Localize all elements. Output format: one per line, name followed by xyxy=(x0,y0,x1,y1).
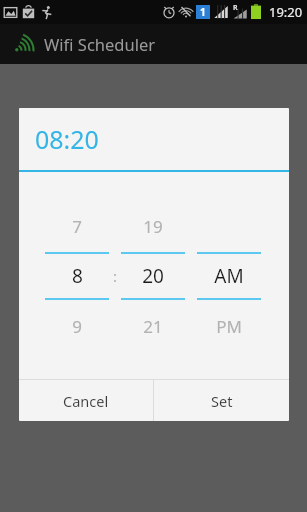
staticText: 19:20 xyxy=(269,3,303,21)
staticText: 19 xyxy=(143,215,163,238)
staticText: 20 xyxy=(142,263,164,289)
staticText: 8 xyxy=(72,263,83,289)
button[interactable]: 20 xyxy=(121,254,185,298)
button[interactable]: 7 xyxy=(45,206,109,246)
button[interactable]: PM xyxy=(197,306,261,346)
staticText: Wifi Scheduler xyxy=(44,33,156,55)
staticText: Cancel xyxy=(63,391,109,411)
button[interactable]: AM xyxy=(197,254,261,298)
staticText: 08:20 xyxy=(35,122,99,156)
staticText: R xyxy=(233,3,238,13)
button[interactable]: Set xyxy=(154,380,289,421)
staticText: 21 xyxy=(143,315,163,338)
button[interactable]: Cancel xyxy=(19,380,153,421)
staticText: 1 xyxy=(200,5,206,19)
button[interactable]: 8 xyxy=(45,254,109,298)
staticText: PM xyxy=(216,315,242,338)
staticText: Set xyxy=(211,391,233,411)
button[interactable]: 19 xyxy=(121,206,185,246)
staticText: 9 xyxy=(72,315,82,338)
button[interactable]: 9 xyxy=(45,306,109,346)
button[interactable]: 21 xyxy=(121,306,185,346)
staticText: : xyxy=(113,266,118,286)
staticText: AM xyxy=(214,263,244,289)
staticText: 7 xyxy=(72,215,82,238)
